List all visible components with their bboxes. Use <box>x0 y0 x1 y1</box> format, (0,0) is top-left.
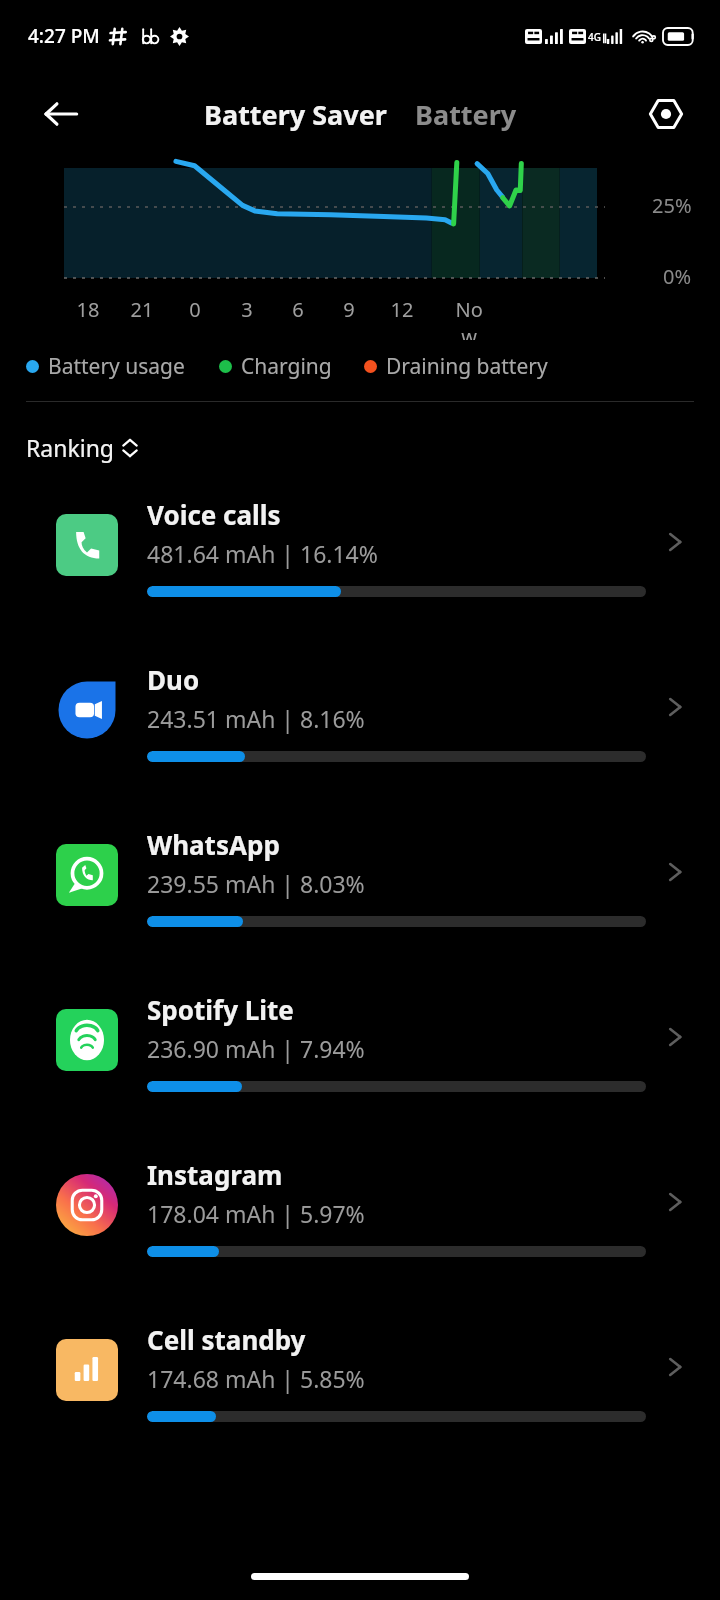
staticText: 18 <box>71 296 105 323</box>
button[interactable]: Battery <box>415 96 517 133</box>
staticText: 481.64 mAh | 16.14% <box>147 538 378 569</box>
staticText: 236.90 mAh | 7.94% <box>147 1033 365 1064</box>
staticText: Duo <box>147 662 200 697</box>
button[interactable]: Ranking <box>26 432 138 463</box>
staticText: 6 <box>281 296 315 323</box>
staticText: 3 <box>230 296 264 323</box>
staticText: 178.04 mAh | 5.97% <box>147 1198 365 1229</box>
staticText: 9 <box>332 296 366 323</box>
staticText: WhatsApp <box>147 827 280 862</box>
staticText: 21 <box>125 296 159 323</box>
button[interactable]: Battery Saver <box>204 96 387 133</box>
staticText: 0% <box>663 263 692 290</box>
staticText: 0 <box>178 296 212 323</box>
button[interactable]: Voice calls <box>0 485 720 650</box>
button[interactable]: WhatsApp <box>0 815 720 980</box>
staticText: Voice calls <box>147 497 281 532</box>
staticText: 25% <box>652 192 692 219</box>
staticText: Battery <box>415 96 517 133</box>
staticText: 239.55 mAh | 8.03% <box>147 868 365 899</box>
button[interactable]: Instagram <box>0 1145 720 1310</box>
button[interactable]: Spotify Lite <box>0 980 720 1145</box>
staticText: 4G <box>588 30 601 44</box>
staticText: Spotify Lite <box>147 992 294 1027</box>
staticText: Draining battery <box>386 352 548 381</box>
staticText: Cell standby <box>147 1322 306 1357</box>
staticText: Now <box>452 296 486 340</box>
staticText: Battery usage <box>48 352 185 381</box>
staticText: 12 <box>385 296 419 323</box>
staticText: Charging <box>241 352 332 381</box>
button[interactable]: Back <box>38 91 84 137</box>
staticText: 243.51 mAh | 8.16% <box>147 703 365 734</box>
staticText: Instagram <box>147 1157 283 1192</box>
button[interactable]: Settings <box>642 90 690 138</box>
staticText: Battery Saver <box>204 96 387 133</box>
staticText: 174.68 mAh | 5.85% <box>147 1363 365 1394</box>
staticText: 4:27 PM <box>28 23 100 49</box>
button[interactable]: Cell standby <box>0 1310 720 1475</box>
staticText: Ranking <box>26 432 114 463</box>
button[interactable]: Duo <box>0 650 720 815</box>
